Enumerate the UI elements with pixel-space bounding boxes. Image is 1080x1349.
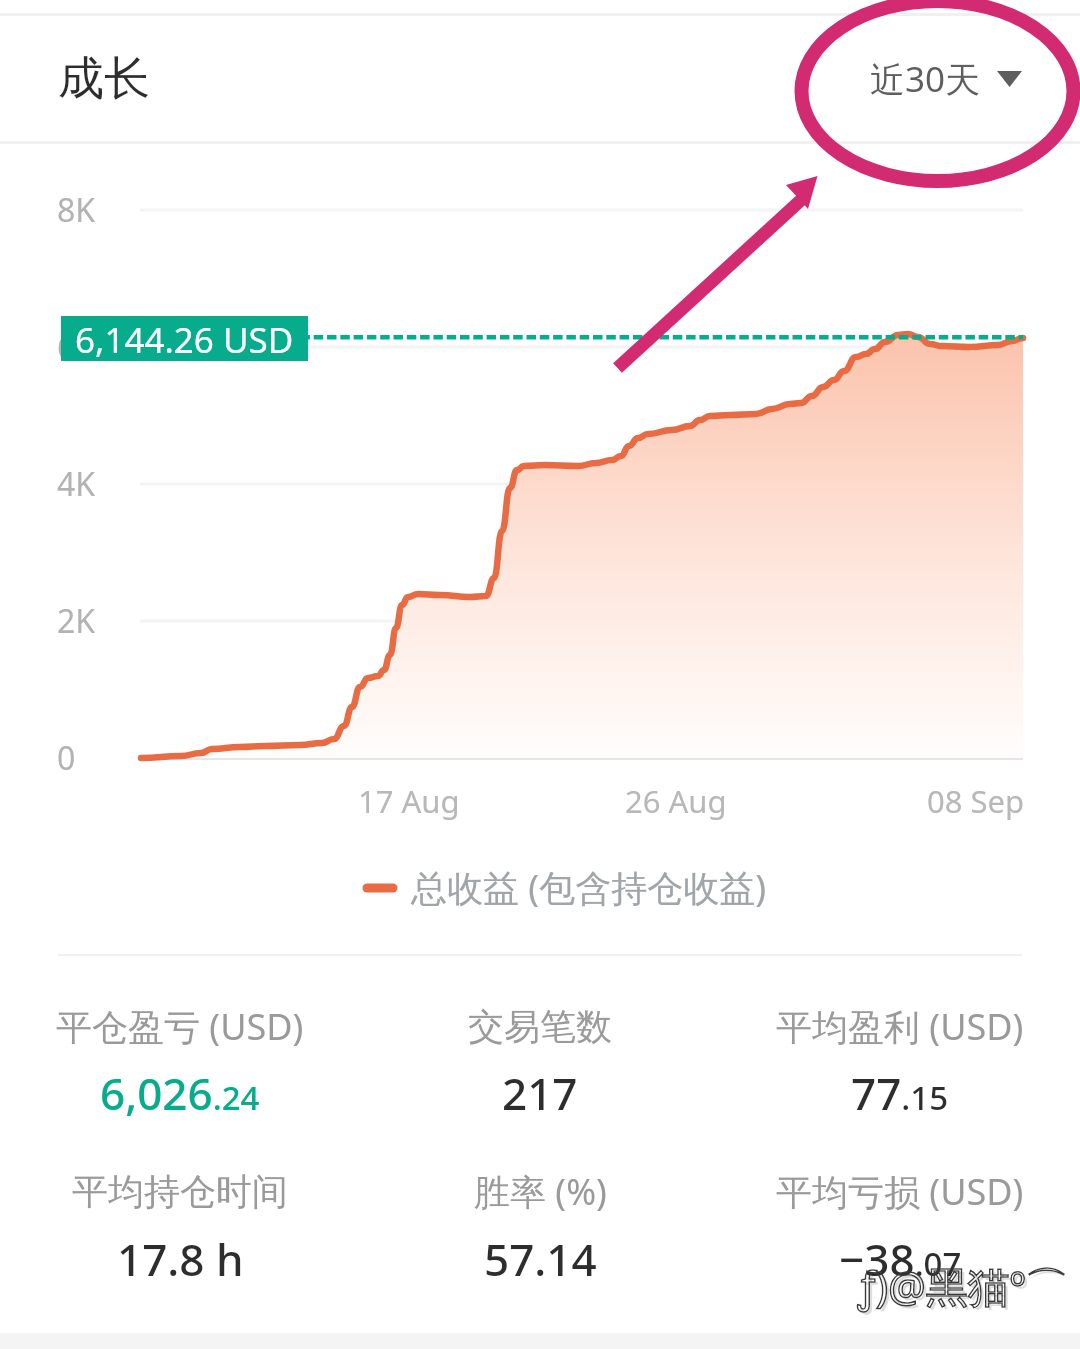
staticText: −38.07 [839, 1229, 962, 1289]
staticText: 8K [57, 188, 96, 232]
staticText: 近30天 [870, 55, 981, 103]
button[interactable] [360, 984, 720, 1135]
staticText: 217 [502, 1063, 578, 1123]
staticText: 77.15 [851, 1063, 949, 1123]
staticText: 成长 [58, 50, 150, 108]
other: 展开下拉菜单 [997, 71, 1022, 87]
staticText: 6,144.26 USD [75, 316, 294, 361]
staticText: 平仓盈亏 (USD) [56, 1002, 304, 1051]
staticText: ƒ)@黑猫º⌒ [858, 1257, 1068, 1314]
staticText: 6K [57, 325, 96, 369]
button[interactable] [360, 1149, 720, 1301]
staticText: 0 [57, 736, 76, 780]
staticText: 平均亏损 (USD) [776, 1167, 1024, 1216]
staticText: 17 Aug [358, 780, 460, 822]
staticText: 交易笔数 [468, 1004, 612, 1049]
staticText: 总收益 (包含持仓收益) [411, 863, 766, 912]
staticText: 08 Sep [927, 780, 1025, 822]
button[interactable]: 总收益 (包含持仓收益) [363, 863, 766, 912]
button[interactable] [720, 1149, 1080, 1301]
staticText: 57.14 [484, 1229, 597, 1289]
staticText: 平均盈利 (USD) [776, 1002, 1024, 1051]
staticText: ƒ)@黑猫º⌒ [861, 1260, 1071, 1317]
staticText: 胜率 (%) [474, 1167, 607, 1216]
staticText: 平均持仓时间 [72, 1169, 288, 1214]
button[interactable] [0, 984, 360, 1135]
staticText: 4K [57, 462, 96, 506]
button[interactable] [0, 1149, 360, 1301]
button[interactable]: 近30天, 选择时间范围 [830, 33, 1080, 125]
staticText: 26 Aug [625, 780, 727, 822]
staticText: 2K [57, 599, 96, 643]
staticText: 6,026.24 [100, 1063, 260, 1123]
button[interactable] [720, 984, 1080, 1135]
staticText: 17.8 h [117, 1229, 244, 1289]
